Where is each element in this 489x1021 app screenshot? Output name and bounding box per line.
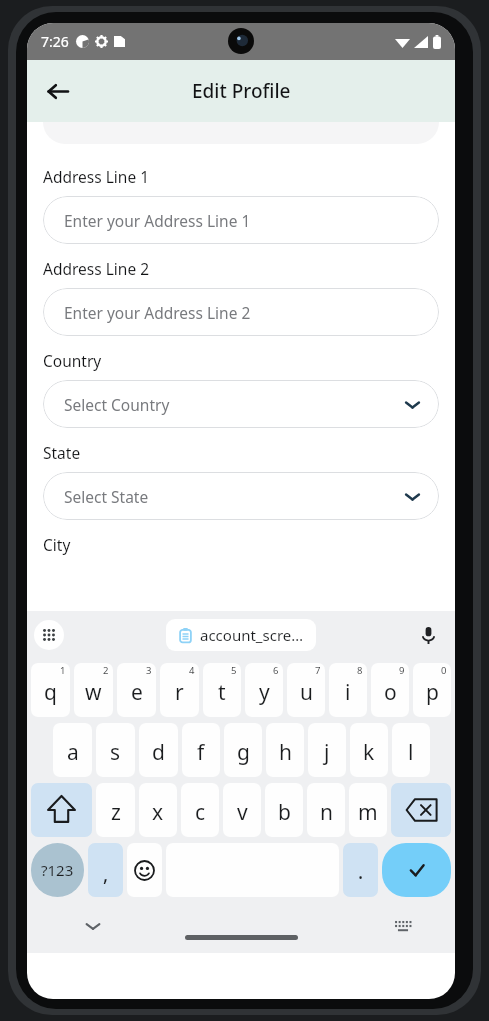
staticText: 7:26 <box>41 32 69 51</box>
staticText: m <box>358 798 378 827</box>
button[interactable]: Enter your Address Line 2 <box>43 288 439 336</box>
staticText: l <box>408 738 414 767</box>
button[interactable]: Emoji <box>127 843 162 897</box>
staticText: 1 <box>60 664 66 677</box>
button[interactable]: h <box>266 723 304 777</box>
staticText: c <box>195 798 206 827</box>
button[interactable]: j <box>308 723 346 777</box>
staticText: 4 <box>189 664 195 677</box>
button[interactable]: Back <box>35 69 79 113</box>
staticText: City <box>43 534 71 555</box>
button[interactable]: . <box>343 843 378 897</box>
button[interactable]: , <box>88 843 123 897</box>
staticText: k <box>363 738 375 767</box>
button[interactable]: y <box>245 663 283 717</box>
button[interactable]: u <box>287 663 325 717</box>
button[interactable]: a <box>53 723 92 777</box>
staticText: ?123 <box>41 860 74 880</box>
staticText: d <box>152 738 165 767</box>
staticText: e <box>131 678 143 707</box>
staticText: 9 <box>399 664 405 677</box>
button[interactable]: x <box>139 783 177 837</box>
staticText: o <box>384 678 397 707</box>
button[interactable]: Select State <box>43 472 439 520</box>
button[interactable]: v <box>223 783 261 837</box>
staticText: t <box>218 678 226 707</box>
button[interactable]: p <box>413 663 451 717</box>
button[interactable]: r <box>160 663 199 717</box>
staticText: State <box>43 442 81 463</box>
button[interactable]: l <box>392 723 430 777</box>
staticText: account_scre… <box>200 625 304 645</box>
staticText: 8 <box>357 664 363 677</box>
staticText: , <box>103 861 109 887</box>
staticText: p <box>426 678 439 707</box>
button[interactable]: Change keyboard <box>386 909 420 943</box>
staticText: Address Line 2 <box>43 258 150 279</box>
staticText: q <box>44 678 57 707</box>
button[interactable]: Select Country <box>43 380 439 428</box>
staticText: Enter your Address Line 1 <box>64 210 251 231</box>
staticText: 2 <box>103 664 109 677</box>
staticText: n <box>320 798 333 827</box>
button[interactable]: Shift <box>31 783 92 837</box>
button[interactable]: ?123 <box>31 843 84 897</box>
staticText: 6 <box>273 664 279 677</box>
staticText: g <box>237 738 250 767</box>
button[interactable]: n <box>307 783 345 837</box>
button[interactable]: g <box>224 723 262 777</box>
staticText: b <box>278 798 291 827</box>
button[interactable]: b <box>265 783 303 837</box>
button[interactable]: Toolbar <box>34 620 64 650</box>
button[interactable]: c <box>181 783 219 837</box>
staticText: y <box>259 678 270 707</box>
staticText: z <box>111 798 121 827</box>
button[interactable]: q <box>31 663 70 717</box>
button[interactable]: Enter your Address Line 1 <box>43 196 439 244</box>
staticText: Select State <box>64 486 149 507</box>
staticText: j <box>324 738 330 767</box>
staticText: Country <box>43 350 102 371</box>
button[interactable]: e <box>117 663 156 717</box>
staticText: 7 <box>315 664 321 677</box>
staticText: 3 <box>146 664 152 677</box>
button[interactable]: Hide keyboard <box>75 908 111 944</box>
button[interactable]: i <box>329 663 367 717</box>
button[interactable]: f <box>182 723 220 777</box>
staticText: v <box>237 798 248 827</box>
button[interactable]: m <box>349 783 387 837</box>
button[interactable]: o <box>371 663 409 717</box>
staticText: a <box>67 738 79 767</box>
staticText: Enter your Address Line 2 <box>64 302 251 323</box>
staticText: r <box>175 678 184 707</box>
staticText: u <box>300 678 313 707</box>
staticText: Edit Profile <box>192 78 291 104</box>
button[interactable]: Voice input <box>411 618 445 652</box>
button[interactable]: t <box>203 663 241 717</box>
staticText: i <box>345 678 351 707</box>
button[interactable]: w <box>74 663 113 717</box>
button[interactable]: d <box>139 723 178 777</box>
button[interactable]: account_scre… <box>166 619 316 651</box>
staticText: Address Line 1 <box>43 166 150 187</box>
button[interactable]: s <box>96 723 135 777</box>
staticText: 0 <box>441 664 447 677</box>
staticText: . <box>358 859 364 885</box>
staticText: 5 <box>231 664 237 677</box>
button[interactable]: Backspace <box>391 783 451 837</box>
staticText: s <box>110 738 121 767</box>
staticText: Select Country <box>64 394 170 415</box>
button[interactable]: k <box>350 723 388 777</box>
button[interactable]: z <box>96 783 135 837</box>
staticText: x <box>152 798 164 827</box>
staticText: w <box>85 678 102 707</box>
button[interactable]: Enter <box>382 843 451 897</box>
staticText: f <box>197 738 205 767</box>
staticText: h <box>279 738 292 767</box>
